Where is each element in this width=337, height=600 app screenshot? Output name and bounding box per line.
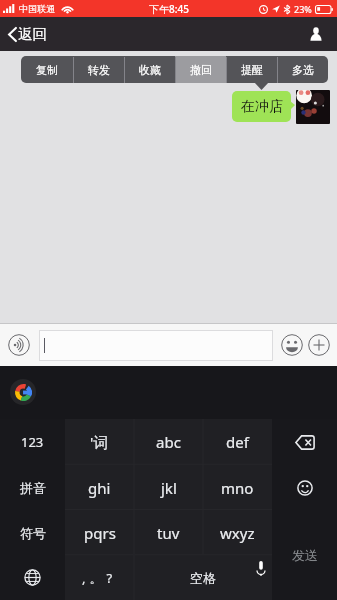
staticText: 撤回 — [190, 63, 212, 77]
button[interactable]: 拼音 — [0, 465, 65, 510]
button[interactable]: 复制 — [21, 56, 73, 83]
staticText: mno — [221, 478, 254, 498]
button[interactable]: 返回 — [0, 17, 57, 51]
button[interactable]: jkl — [134, 465, 203, 510]
staticText: 23% — [294, 3, 312, 15]
staticText: 在冲店 — [241, 98, 283, 116]
staticText: 发送 — [292, 547, 318, 563]
staticText: 下午8:45 — [149, 2, 189, 16]
button[interactable]: tuv — [134, 510, 203, 555]
button[interactable]: ,。? — [65, 555, 134, 600]
staticText: 收藏 — [139, 63, 161, 77]
staticText: 123 — [21, 433, 44, 451]
button[interactable]: Emoji — [272, 510, 337, 555]
button[interactable]: Contact info — [299, 17, 337, 51]
staticText: tuv — [157, 523, 180, 543]
other: Voice typing — [256, 561, 266, 576]
button[interactable]: 多选 — [277, 56, 328, 83]
button[interactable]: 发送 — [272, 509, 337, 600]
other: Backspace — [295, 435, 315, 450]
staticText: 返回 — [18, 25, 47, 43]
staticText: abc — [156, 432, 181, 452]
staticText: 多选 — [292, 63, 314, 77]
staticText: ,。? — [82, 569, 117, 587]
button[interactable]: Switch input language — [0, 555, 65, 600]
staticText: wxyz — [220, 523, 255, 543]
staticText: '词 — [90, 432, 109, 452]
button[interactable]: Backspace — [272, 419, 337, 465]
staticText: ghi — [88, 478, 111, 498]
staticText: pqrs — [84, 523, 116, 543]
button[interactable]: More options — [308, 334, 330, 356]
button[interactable]: 收藏 — [124, 56, 175, 83]
button[interactable]: def — [203, 419, 272, 465]
button[interactable]: abc — [134, 419, 203, 465]
button[interactable]: Emoji — [281, 334, 303, 356]
button[interactable]: 符号 — [0, 510, 65, 555]
staticText: 中国联通 — [19, 3, 55, 14]
button[interactable]: 提醒 — [226, 56, 277, 83]
staticText: 复制 — [36, 63, 58, 77]
button[interactable]: 转发 — [73, 56, 124, 83]
button[interactable]: pqrs — [65, 510, 134, 555]
button[interactable]: Google — [10, 379, 36, 405]
button[interactable]: 撤回 — [175, 56, 226, 83]
staticText: def — [226, 432, 249, 452]
button[interactable]: '词 — [65, 419, 134, 465]
other: Emoji — [297, 480, 313, 496]
staticText: 拼音 — [20, 480, 46, 496]
staticText: 符号 — [20, 525, 46, 541]
button[interactable]: wxyz — [203, 510, 272, 555]
button[interactable]: mno — [203, 465, 272, 510]
staticText: 转发 — [88, 63, 110, 77]
button[interactable]: ghi — [65, 465, 134, 510]
staticText: 空格 — [190, 570, 216, 586]
button[interactable]: Emoji — [272, 465, 337, 510]
button[interactable]: 空格 — [134, 555, 272, 600]
button[interactable]: Voice input — [8, 334, 30, 356]
staticText: jkl — [161, 478, 177, 498]
button[interactable]: 123 — [0, 419, 65, 465]
staticText: 提醒 — [241, 63, 263, 77]
